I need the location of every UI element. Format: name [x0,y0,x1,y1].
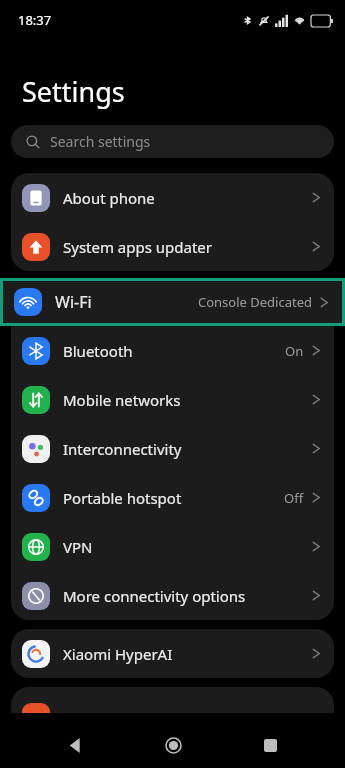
staticText: Search settings [50,132,151,151]
button[interactable]: More connectivity options [11,571,334,620]
button[interactable]: Bluetooth [11,326,334,375]
staticText: Console Dedicated [198,293,312,311]
staticText: Off [284,489,304,507]
button[interactable]: About phone [11,173,334,222]
staticText: Bluetooth [63,341,133,361]
button[interactable]: Search settings [11,125,334,158]
button[interactable] [11,687,334,713]
staticText: Mobile networks [63,390,181,410]
staticText: 18:37 [18,11,52,29]
button[interactable]: VPN [11,522,334,571]
staticText: More connectivity options [63,586,246,606]
staticText: Settings [22,73,125,110]
button[interactable]: Interconnectivity [11,424,334,473]
button[interactable]: Back [53,723,97,767]
button[interactable]: Xiaomi HyperAI [11,629,334,678]
button[interactable]: Recent apps [248,723,292,767]
staticText: Interconnectivity [63,439,182,459]
button[interactable]: Mobile networks [11,375,334,424]
staticText: VPN [63,537,93,557]
button[interactable]: Portable hotspot [11,473,334,522]
button[interactable]: Home [151,723,195,767]
button[interactable]: System apps updater [11,222,334,271]
staticText: System apps updater [63,237,213,257]
button[interactable]: Wi-Fi [3,281,342,323]
staticText: About phone [63,188,155,208]
staticText: On [285,342,304,360]
staticText: Xiaomi HyperAI [63,644,173,664]
staticText: Portable hotspot [63,488,182,508]
staticText: Wi-Fi [55,291,92,313]
